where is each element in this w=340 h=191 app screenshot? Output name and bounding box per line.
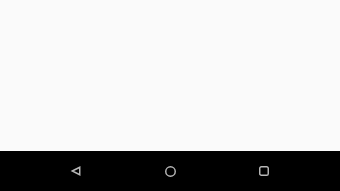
- button[interactable]: Home: [147, 151, 193, 191]
- button[interactable]: Back: [53, 151, 99, 191]
- button[interactable]: Recent apps: [241, 151, 287, 191]
